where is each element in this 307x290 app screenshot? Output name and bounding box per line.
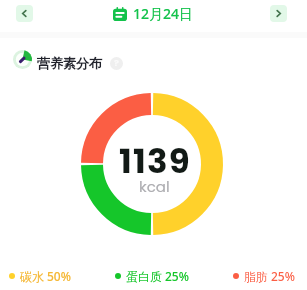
button[interactable]: 脂肪 (233, 268, 295, 284)
staticText: 50% (47, 268, 71, 284)
button[interactable]: Previous day (16, 5, 33, 22)
staticText: 25% (271, 268, 295, 284)
staticText: 蛋白质 (126, 269, 162, 284)
staticText: 营养素分布 (37, 55, 102, 71)
staticText: 碳水 (20, 269, 44, 284)
button[interactable]: 蛋白质 (115, 268, 189, 284)
staticText: kcal (139, 176, 170, 197)
staticText: 12月24日 (133, 4, 194, 23)
button[interactable]: Help (110, 57, 123, 70)
staticText: 脂肪 (244, 269, 268, 284)
staticText: ? (114, 57, 119, 70)
button[interactable]: Next day (270, 5, 287, 22)
staticText: 25% (165, 268, 189, 284)
staticText: 1139 (119, 137, 191, 185)
button[interactable]: 碳水 (9, 268, 71, 284)
